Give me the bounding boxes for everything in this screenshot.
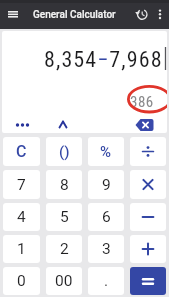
staticText: 386 bbox=[130, 93, 154, 111]
button[interactable]: 9 bbox=[88, 170, 124, 199]
button[interactable]: 00 bbox=[46, 267, 82, 295]
button[interactable] bbox=[152, 6, 168, 23]
button[interactable]: 3 bbox=[88, 235, 124, 263]
staticText: % bbox=[100, 143, 112, 161]
staticText: 5 bbox=[60, 208, 69, 226]
button[interactable]: 8,354−7,968 bbox=[2, 31, 167, 133]
button[interactable]: 4 bbox=[3, 203, 40, 231]
staticText: 9 bbox=[102, 176, 111, 194]
button[interactable] bbox=[2, 6, 24, 23]
button[interactable]: 0 bbox=[3, 267, 40, 295]
button[interactable] bbox=[130, 137, 166, 166]
staticText: . bbox=[104, 272, 109, 290]
staticText: 1 bbox=[17, 240, 26, 258]
button[interactable]: 2 bbox=[46, 235, 82, 263]
button[interactable] bbox=[130, 267, 166, 295]
staticText: 6 bbox=[102, 208, 111, 226]
button[interactable]: 5 bbox=[46, 203, 82, 231]
button[interactable]: 8 bbox=[46, 170, 82, 199]
staticText: 00 bbox=[55, 272, 73, 290]
staticText: 8,354−7,968 bbox=[44, 47, 163, 73]
button[interactable] bbox=[130, 203, 166, 231]
staticText: 0 bbox=[17, 272, 26, 290]
button[interactable]: . bbox=[88, 267, 124, 295]
button[interactable]: C bbox=[3, 137, 40, 166]
staticText: 7 bbox=[17, 176, 26, 194]
button[interactable]: 1 bbox=[3, 235, 40, 263]
staticText: General Calculator bbox=[33, 9, 116, 21]
staticText: () bbox=[59, 143, 70, 161]
staticText: 3 bbox=[102, 240, 111, 258]
button[interactable] bbox=[130, 235, 166, 263]
button[interactable] bbox=[130, 170, 166, 199]
staticText: 2 bbox=[60, 240, 69, 258]
button[interactable] bbox=[133, 6, 150, 23]
staticText: 8 bbox=[60, 176, 69, 194]
button[interactable]: 7 bbox=[3, 170, 40, 199]
button[interactable]: % bbox=[88, 137, 124, 166]
button[interactable]: () bbox=[46, 137, 82, 166]
staticText: C bbox=[16, 142, 27, 161]
staticText: 4 bbox=[17, 208, 26, 226]
button[interactable]: 6 bbox=[88, 203, 124, 231]
